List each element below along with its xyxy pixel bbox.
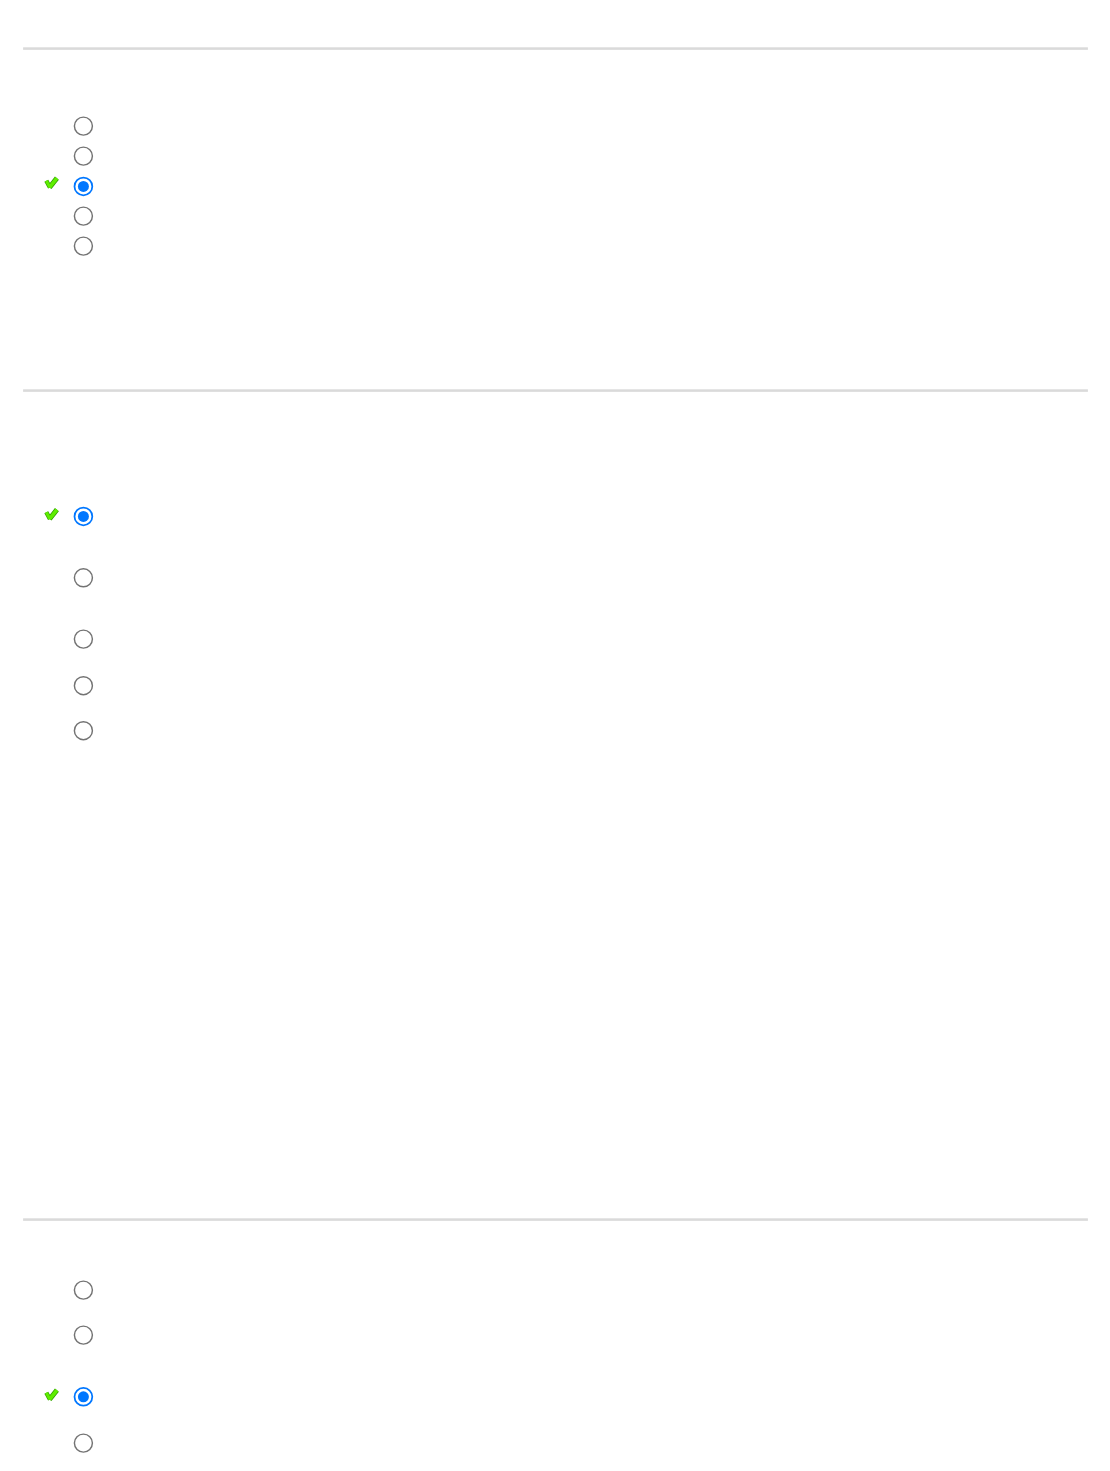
button[interactable]: Selected answer option — [71, 174, 95, 198]
button[interactable]: Selected answer option — [71, 1385, 95, 1409]
button[interactable]: Answer option — [71, 1278, 95, 1302]
button[interactable]: Answer option — [71, 144, 95, 168]
button[interactable]: Answer option — [71, 719, 95, 743]
button[interactable]: Answer option — [71, 204, 95, 228]
button[interactable]: Answer option — [71, 566, 95, 590]
button[interactable]: Answer option — [71, 1323, 95, 1347]
button[interactable]: Answer option — [71, 234, 95, 258]
button[interactable]: Answer option — [71, 114, 95, 138]
button[interactable]: Answer option — [71, 674, 95, 698]
button[interactable]: Answer option — [71, 627, 95, 651]
button[interactable]: Selected answer option — [71, 504, 95, 528]
button[interactable]: Answer option — [71, 1431, 95, 1455]
